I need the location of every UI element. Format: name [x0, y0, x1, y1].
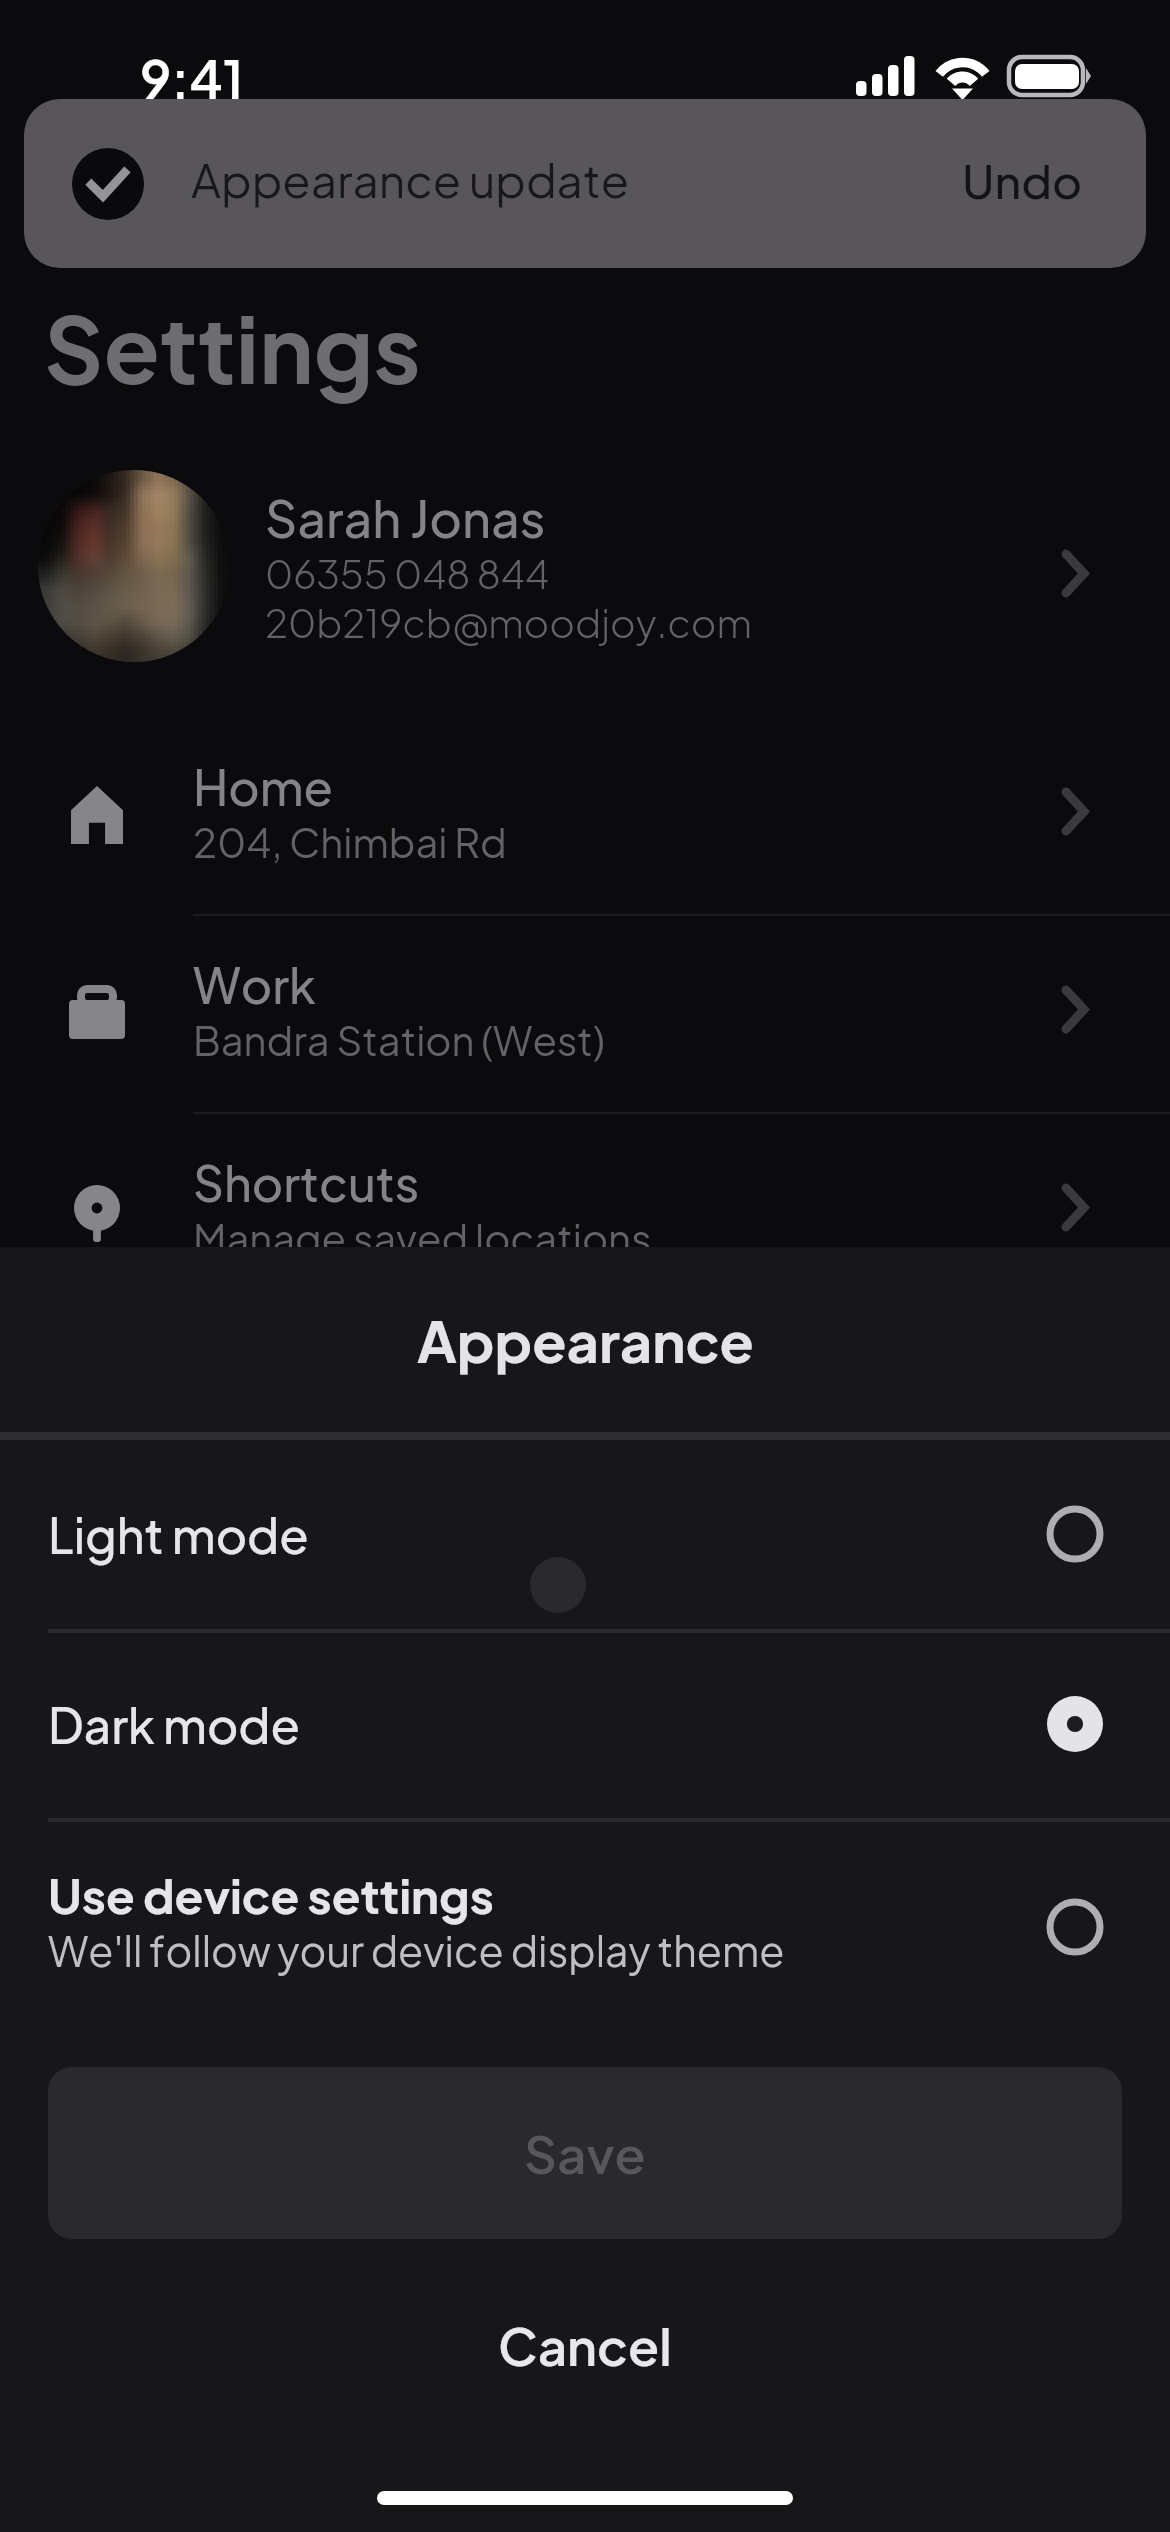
- staticText: Manage saved locations: [193, 1212, 652, 1262]
- button[interactable]: Home: [0, 721, 1170, 901]
- staticText: Sarah Jonas: [265, 486, 546, 549]
- staticText: Use device settings: [48, 1865, 494, 1924]
- other: Success: [72, 148, 144, 220]
- other: Signal, Wi-Fi and battery: [850, 50, 1100, 100]
- button[interactable]: Cancel: [0, 2275, 1170, 2415]
- other: Open Home: [1063, 789, 1088, 834]
- staticText: Save: [524, 2121, 646, 2185]
- staticText: Shortcuts: [193, 1152, 420, 1212]
- button[interactable]: Light mode: [0, 1439, 1170, 1628]
- button[interactable]: Shortcuts: [0, 1117, 1170, 1297]
- other: Open Work: [1063, 987, 1088, 1032]
- staticText: 06355 048 844: [265, 549, 550, 598]
- other: Open Shortcuts: [1063, 1185, 1088, 1230]
- staticText: Dark mode: [48, 1694, 300, 1754]
- staticText: Work: [193, 954, 316, 1014]
- staticText: Bandra Station (West): [193, 1014, 605, 1064]
- other: Selected: [1045, 1694, 1105, 1754]
- staticText: 20b219cb@moodjoy.com: [265, 598, 752, 647]
- staticText: Cancel: [498, 2313, 672, 2377]
- staticText: 9:41: [140, 45, 244, 111]
- other: Not selected: [1045, 1897, 1105, 1957]
- button[interactable]: Use device settings: [0, 1820, 1170, 2020]
- staticText: Appearance update: [191, 150, 630, 208]
- button[interactable]: Work: [0, 919, 1170, 1099]
- staticText: Home: [193, 756, 333, 816]
- staticText: Appearance: [417, 1305, 754, 1376]
- staticText: 204, Chimbai Rd: [193, 816, 507, 866]
- button[interactable]: Save: [48, 2067, 1122, 2239]
- button[interactable]: Undo: [962, 151, 1083, 209]
- button[interactable]: Sarah Jonas: [0, 470, 1170, 662]
- staticText: Light mode: [48, 1504, 309, 1564]
- other: Not selected: [1045, 1504, 1105, 1564]
- other: Open profile: [1063, 551, 1088, 596]
- button[interactable]: Success: [24, 99, 1146, 268]
- button[interactable]: Dark mode: [0, 1631, 1170, 1817]
- staticText: Settings: [44, 289, 421, 405]
- staticText: We'll follow your device display theme: [48, 1924, 785, 1976]
